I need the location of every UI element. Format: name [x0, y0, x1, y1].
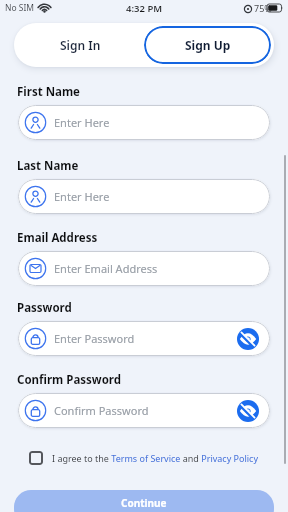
staticText: 4:32 PM	[126, 2, 163, 15]
button[interactable]: Sign In	[17, 26, 144, 64]
staticText: Email Address	[17, 230, 98, 246]
button[interactable]: Enter Password	[18, 321, 270, 356]
staticText: 75%	[254, 2, 272, 14]
staticText: Last Name	[17, 158, 79, 174]
button[interactable]: Sign Up	[144, 26, 271, 64]
staticText: Enter Here	[54, 189, 110, 204]
staticText: Sign In	[60, 37, 101, 53]
staticText: Enter Here	[54, 115, 110, 130]
button[interactable]: Enter Email Address	[18, 251, 270, 286]
staticText: I agree to the Terms of Service and Priv…	[52, 452, 259, 464]
staticText: Enter Email Address	[54, 261, 158, 276]
staticText: Confirm Password	[54, 403, 149, 418]
button[interactable]: Enter Here	[18, 179, 270, 214]
button[interactable]	[237, 328, 259, 350]
staticText: No SIM	[5, 2, 35, 14]
button[interactable]	[237, 400, 259, 422]
button[interactable]: I agree to the Terms of Service and Priv…	[0, 451, 288, 465]
staticText: Confirm Password	[17, 372, 122, 388]
staticText: Sign Up	[185, 37, 231, 53]
staticText: First Name	[17, 84, 80, 100]
button[interactable]: Confirm Password	[18, 393, 270, 428]
staticText: Continue	[121, 496, 167, 510]
button[interactable]: Continue	[14, 490, 274, 512]
staticText: Enter Password	[54, 331, 135, 346]
staticText: Password	[17, 300, 72, 316]
button[interactable]: Enter Here	[18, 105, 270, 140]
